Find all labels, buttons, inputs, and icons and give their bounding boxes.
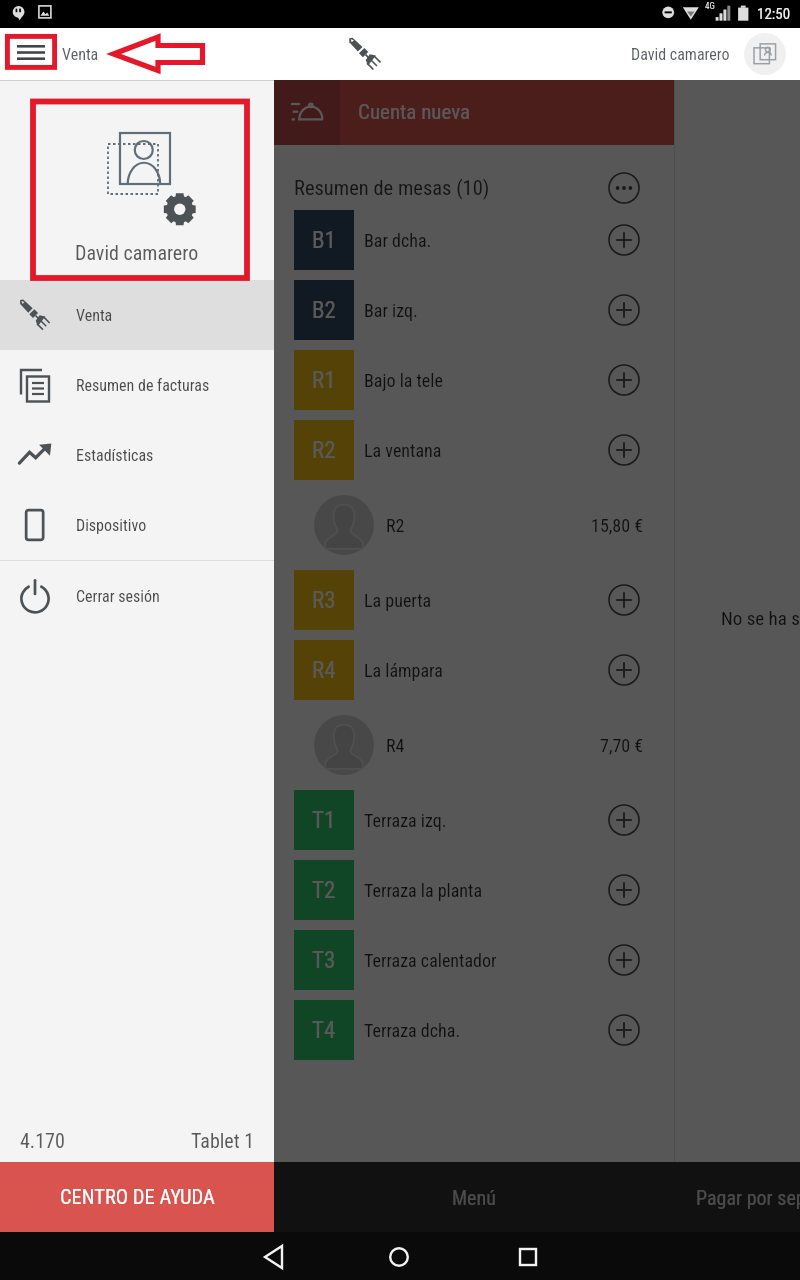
button[interactable]: T2 <box>294 855 640 925</box>
staticText: 4.170 <box>20 1129 65 1152</box>
staticText: La lámpara <box>364 660 443 681</box>
staticText: Cerrar sesión <box>76 587 160 606</box>
staticText: Terraza dcha. <box>364 1020 461 1041</box>
staticText: 15,80 € <box>591 515 644 536</box>
staticText: Venta <box>62 45 99 64</box>
staticText: R4 <box>312 657 336 684</box>
staticText: Bar izq. <box>364 300 418 321</box>
staticText: No se ha seleccionado ninguna mesa <box>721 607 800 629</box>
button[interactable]: Add order <box>608 654 640 686</box>
staticText: Cuenta nueva <box>358 100 471 125</box>
staticText: David camarero <box>75 241 199 264</box>
staticText: R1 <box>312 367 336 394</box>
staticText: Pagar por separado <box>696 1186 800 1209</box>
staticText: R4 <box>386 735 405 756</box>
staticText: T3 <box>312 947 336 974</box>
button[interactable]: Add order <box>608 434 640 466</box>
button[interactable]: R4 <box>294 635 640 705</box>
button[interactable]: Add order <box>608 364 640 396</box>
staticText: Terraza izq. <box>364 810 447 831</box>
button[interactable]: Add order <box>608 944 640 976</box>
staticText: 12:50 <box>757 5 791 23</box>
staticText: Resumen de mesas (10) <box>294 176 490 200</box>
staticText: R3 <box>312 587 336 614</box>
button[interactable]: Cerrar sesión <box>0 561 274 631</box>
staticText: Dispositivo <box>76 516 147 535</box>
button[interactable]: R2 <box>314 485 644 565</box>
button[interactable]: T1 <box>294 785 640 855</box>
button[interactable]: T4 <box>294 995 640 1065</box>
button[interactable]: B1 <box>294 205 640 275</box>
button[interactable]: Add order <box>608 804 640 836</box>
button[interactable]: Add order <box>608 294 640 326</box>
button[interactable]: Resumen de facturas <box>0 350 274 420</box>
staticText: Venta <box>76 306 113 325</box>
staticText: Terraza calentador <box>364 950 497 971</box>
staticText: David camarero <box>631 45 730 64</box>
button[interactable]: More options <box>608 172 640 204</box>
button[interactable]: Venta <box>0 280 274 350</box>
button[interactable]: Profile <box>0 81 274 280</box>
button[interactable]: Dispositivo <box>0 490 274 560</box>
button[interactable]: CENTRO DE AYUDA <box>0 1162 274 1232</box>
button[interactable]: B2 <box>294 275 640 345</box>
staticText: T2 <box>312 877 336 904</box>
button[interactable]: Cobrar <box>0 1162 274 1232</box>
button[interactable]: Account <box>744 33 786 75</box>
staticText: La puerta <box>364 590 432 611</box>
staticText: Cobrar <box>111 1186 164 1209</box>
button[interactable]: Add order <box>608 224 640 256</box>
button[interactable]: R3 <box>294 565 640 635</box>
button[interactable]: Add order <box>608 584 640 616</box>
button[interactable]: Estadísticas <box>0 420 274 490</box>
staticText: Venta <box>62 45 99 64</box>
staticText: R2 <box>312 437 336 464</box>
staticText: Estadísticas <box>76 446 154 465</box>
staticText: CENTRO DE AYUDA <box>60 1185 215 1209</box>
staticText: Resumen de facturas <box>76 376 210 395</box>
staticText: Menú <box>452 1186 496 1209</box>
staticText: Tablet 1 <box>191 1129 255 1152</box>
button[interactable]: Cuenta nueva <box>274 80 674 145</box>
button[interactable]: Menú <box>274 1162 674 1232</box>
button[interactable]: Add order <box>608 1014 640 1046</box>
button[interactable]: R4 <box>314 705 644 785</box>
staticText: 4G <box>705 1 715 12</box>
staticText: La ventana <box>364 440 442 461</box>
staticText: T4 <box>312 1017 336 1044</box>
staticText: R2 <box>386 515 405 536</box>
staticText: Bajo la tele <box>364 370 443 391</box>
staticText: B1 <box>312 227 336 254</box>
button[interactable]: R1 <box>294 345 640 415</box>
staticText: Bar dcha. <box>364 230 432 251</box>
button[interactable]: Pagar por separado <box>674 1162 800 1232</box>
button[interactable]: Add order <box>608 874 640 906</box>
button[interactable]: T3 <box>294 925 640 995</box>
button[interactable]: Open navigation drawer <box>0 28 62 80</box>
button[interactable]: R2 <box>294 415 640 485</box>
staticText: B2 <box>312 297 336 324</box>
staticText: 7,70 € <box>600 735 644 756</box>
staticText: Terraza la planta <box>364 880 483 901</box>
staticText: T1 <box>312 807 336 834</box>
